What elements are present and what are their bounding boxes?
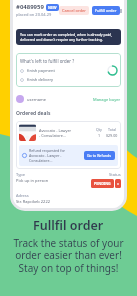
staticText: Str. Rapcikeb 2222 [16, 199, 50, 204]
staticText: You can mark order as completed, when is… [20, 32, 117, 42]
button[interactable]: finish delivery [20, 77, 54, 82]
button[interactable]: PENDING [94, 181, 111, 186]
staticText: Total [108, 127, 117, 132]
staticText: finish payment [27, 68, 55, 73]
staticText: Adress [16, 193, 29, 198]
staticText: placed on 20.04.29 [16, 12, 52, 17]
staticText: Qty [96, 127, 102, 132]
staticText: Ordered deals [16, 110, 51, 117]
staticText: x [117, 181, 119, 186]
staticText: PENDING [94, 181, 111, 186]
staticText: #0489959 [16, 3, 44, 11]
button[interactable]: Remove status [117, 181, 119, 186]
staticText: Pick up in person [16, 178, 49, 183]
staticText: Cancel order [62, 8, 86, 13]
staticText: username [27, 97, 47, 102]
staticText: Avvocato - Lawyer - Consulatore... [39, 128, 96, 138]
staticText: Type [16, 172, 25, 177]
staticText: Go to Refunds [87, 153, 112, 158]
staticText: What's left to fulfill order ? [20, 58, 75, 64]
staticText: Fullfil order [33, 217, 104, 234]
staticText: finish delivery [27, 77, 54, 82]
staticText: $29.00 [106, 133, 118, 138]
staticText: Status [109, 172, 121, 177]
staticText: Refund requested for Avvocato - Lawyer -… [29, 148, 84, 163]
button[interactable]: Fulfill order [95, 8, 117, 13]
staticText: Fulfill order [95, 8, 117, 13]
staticText: Track the status of your order easier th… [13, 236, 124, 275]
button[interactable]: Cancel order [62, 8, 86, 13]
staticText: 1 [98, 133, 101, 138]
button[interactable]: finish payment [20, 68, 55, 73]
button[interactable]: Manage buyer [93, 97, 121, 102]
staticText: NEW [48, 5, 57, 10]
button[interactable]: Go to Refunds [87, 153, 112, 158]
